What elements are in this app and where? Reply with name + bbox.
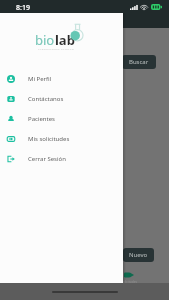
staticText: Pacientes <box>28 115 55 123</box>
staticText: bio <box>35 31 55 49</box>
staticText: 8:19 <box>16 3 30 13</box>
button[interactable]: Mis solicitudes <box>0 129 123 149</box>
button[interactable]: Pacientes <box>0 109 123 129</box>
staticText: LABORATORIO CLINICO <box>38 47 75 50</box>
staticText: Contáctanos <box>28 95 64 103</box>
button[interactable]: Mi Perfil <box>0 69 123 89</box>
button[interactable]: Cerrar Sesión <box>0 149 123 169</box>
button[interactable]: Solicitudes <box>117 266 141 283</box>
staticText: Mis solicitudes <box>28 135 70 143</box>
staticText: Buscar <box>129 58 149 66</box>
button[interactable]: Nuevo <box>123 248 154 262</box>
staticText: Nuevo <box>129 251 148 259</box>
staticText: Mi Perfil <box>28 75 52 83</box>
button[interactable]: Buscar <box>122 55 156 69</box>
staticText: lab <box>55 31 75 49</box>
staticText: Cerrar Sesión <box>28 155 66 163</box>
button[interactable]: Contáctanos <box>0 89 123 109</box>
staticText: Solicitudes <box>121 280 138 283</box>
